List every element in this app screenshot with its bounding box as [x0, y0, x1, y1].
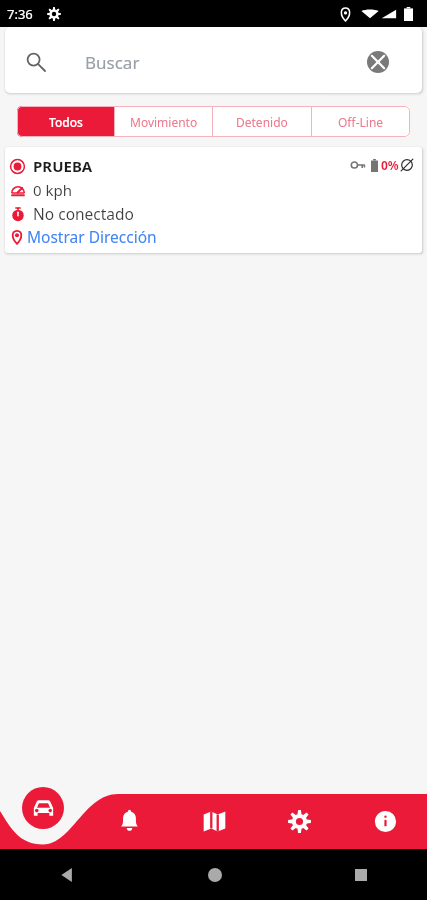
button[interactable]: Todos: [17, 106, 114, 137]
staticText: 0%: [381, 157, 399, 173]
staticText: 0 kph: [33, 180, 72, 200]
staticText: Buscar: [85, 51, 140, 74]
staticText: PRUEBA: [33, 156, 93, 176]
staticText: Mostrar Dirección: [27, 226, 157, 247]
staticText: Todos: [49, 114, 83, 130]
button[interactable]: Movimiento: [115, 106, 212, 137]
staticText: Off-Line: [338, 114, 384, 130]
button[interactable]: Off-Line: [312, 106, 410, 137]
staticText: 7:36: [7, 5, 33, 23]
button[interactable]: PRUEBA: [5, 147, 422, 253]
button[interactable]: Vehicles: [22, 787, 64, 829]
button[interactable]: Detenido: [213, 106, 311, 137]
button[interactable]: Clear: [365, 49, 391, 75]
button[interactable]: Buscar: [5, 27, 422, 93]
staticText: Detenido: [236, 114, 288, 130]
staticText: No conectado: [33, 203, 134, 224]
button[interactable]: Notifications: [108, 800, 150, 842]
staticText: Movimiento: [130, 114, 198, 130]
button[interactable]: Info: [364, 800, 406, 842]
button[interactable]: Settings: [278, 800, 320, 842]
button[interactable]: Map: [193, 800, 235, 842]
button[interactable]: Mostrar Dirección: [10, 226, 157, 247]
